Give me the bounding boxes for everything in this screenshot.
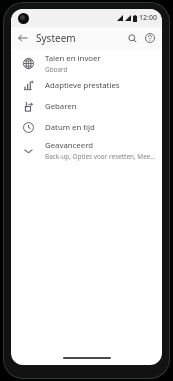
staticText: Geavanceerd [45,140,93,151]
button[interactable]: Talen en invoer [11,51,162,75]
staticText: Datum en tijd [45,122,95,133]
staticText: Gboard [45,65,68,74]
button[interactable]: Terug [14,29,32,47]
staticText: Gebaren [45,101,77,112]
staticText: 12:00 [139,13,157,23]
button[interactable]: Datum en tijd [11,117,162,138]
staticText: Talen en invoer [45,53,101,64]
button[interactable]: Adaptieve prestaties [11,75,162,96]
button[interactable]: Zoeken [123,29,141,47]
staticText: Adaptieve prestaties [45,80,120,91]
button[interactable]: Geavanceerd [11,138,162,162]
staticText: Systeem [36,31,76,45]
button[interactable]: Help [141,29,159,47]
button[interactable]: Gebaren [11,96,162,117]
staticText: Back-up, Opties voor resetten, Meerdere … [45,152,156,161]
